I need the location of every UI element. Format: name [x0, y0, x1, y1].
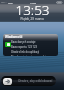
staticText: Otwórz, aby odblokować — [18, 79, 53, 83]
other: Slide to unlock — [3, 78, 12, 85]
staticText: Baza danych zostaje — [11, 40, 36, 44]
button[interactable]: Wiadomość — [3, 34, 58, 56]
staticText: Piątek, 29 marca — [20, 17, 44, 21]
staticText: Otwórz link do aplikacji — [11, 50, 40, 54]
staticText: Play — [8, 1, 13, 4]
button[interactable]: Slide to unlock — [1, 76, 56, 86]
staticText: Baza raportu 123 123 — [11, 45, 37, 49]
staticText: Nie chcę się tam to generalnie — [11, 55, 48, 56]
staticText: Wiadomość — [5, 35, 23, 39]
staticText: 13:53 — [15, 1, 50, 19]
staticText: 13:53 — [30, 1, 37, 4]
